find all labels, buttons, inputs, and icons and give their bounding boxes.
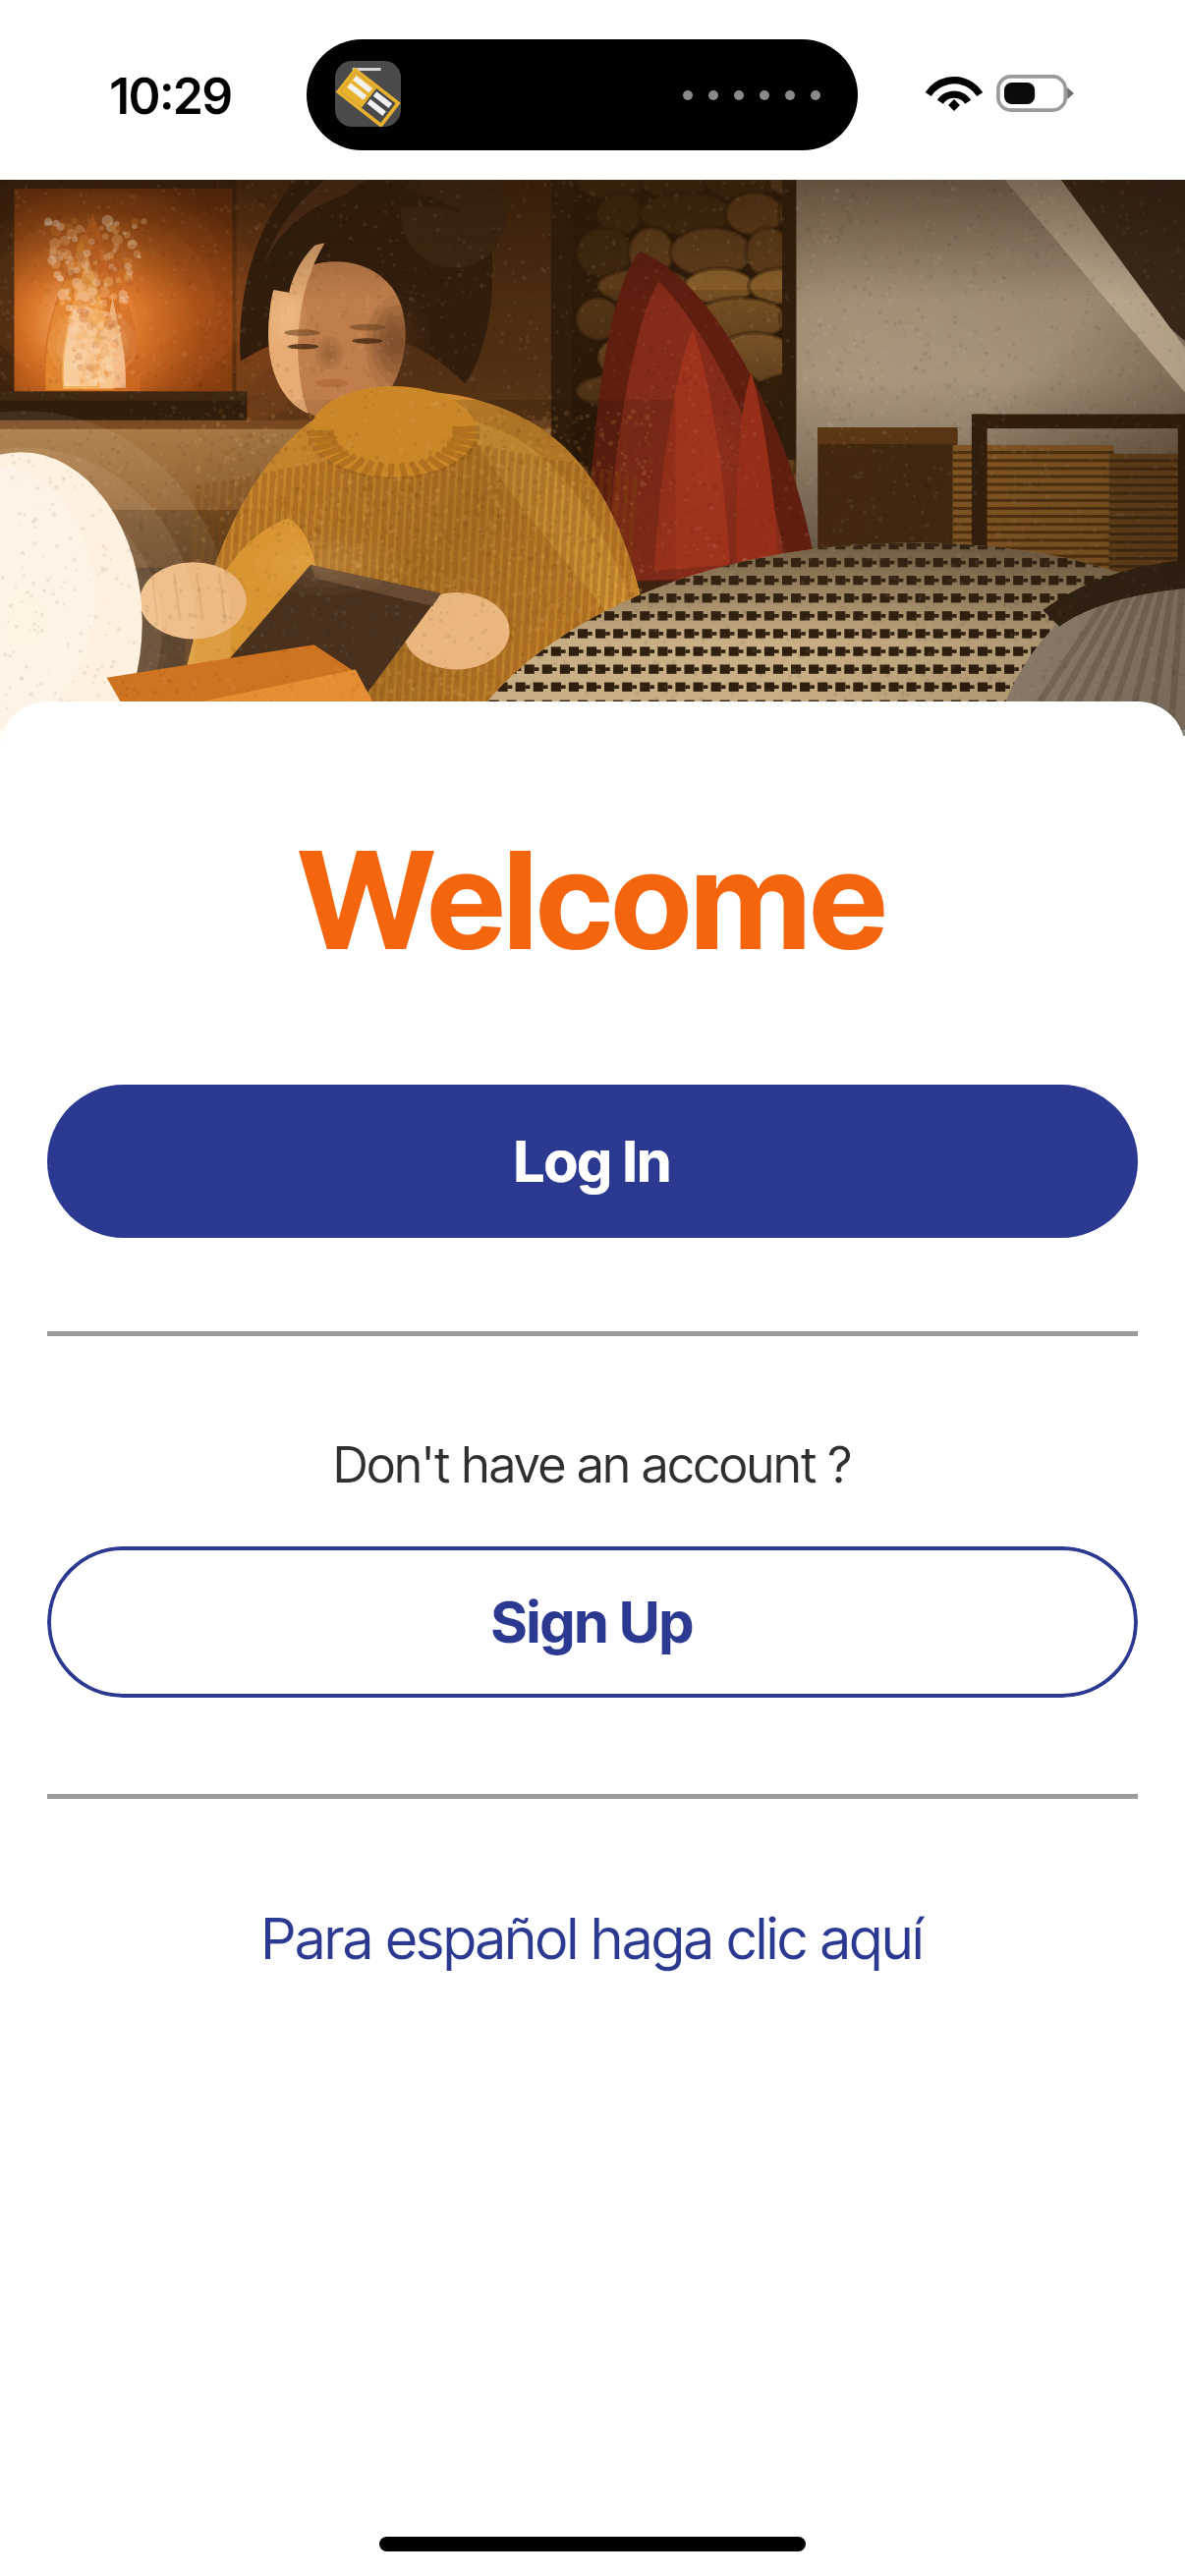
staticText: Don't have an account ? xyxy=(0,1434,1185,1495)
staticText: Log In xyxy=(514,1127,671,1196)
staticText: 10:29 xyxy=(110,67,233,126)
staticText: Welcome xyxy=(0,817,1185,981)
staticText: Para español haga clic aquí xyxy=(0,1904,1185,1973)
button[interactable]: Sign Up xyxy=(47,1546,1138,1698)
button[interactable]: Log In xyxy=(47,1085,1138,1238)
button[interactable]: Para español haga clic aquí xyxy=(0,1904,1185,1979)
button[interactable]: How I Built This — now playing xyxy=(335,61,401,127)
staticText: Sign Up xyxy=(491,1588,694,1656)
